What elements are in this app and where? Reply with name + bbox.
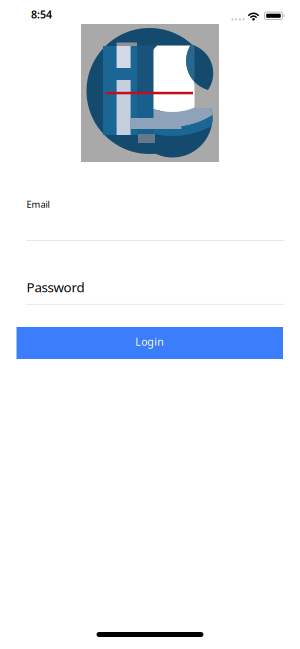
button[interactable]: Email xyxy=(26,198,284,241)
staticText: Login xyxy=(135,334,164,349)
staticText: Password xyxy=(26,278,84,296)
staticText: Email xyxy=(26,198,49,210)
button[interactable]: Login xyxy=(16,327,283,359)
staticText: 8:54 xyxy=(31,7,52,21)
button[interactable]: Password xyxy=(26,277,284,304)
